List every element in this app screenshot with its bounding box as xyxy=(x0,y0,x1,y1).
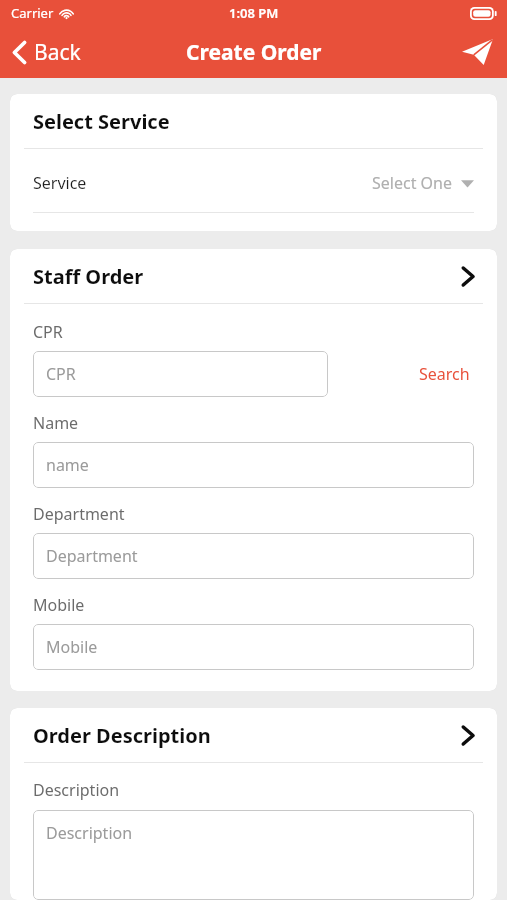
staticText: Order Description xyxy=(33,722,461,749)
button[interactable]: Order Description xyxy=(10,708,497,762)
staticText: Staff Order xyxy=(33,263,461,290)
staticText: Create Order xyxy=(186,38,322,67)
staticText: Department xyxy=(46,545,138,567)
staticText: Select Service xyxy=(33,108,475,135)
button[interactable]: Staff Order xyxy=(10,249,497,303)
staticText: Select One xyxy=(372,172,452,194)
button[interactable]: Mobile xyxy=(33,624,474,670)
staticText: Description xyxy=(33,779,120,801)
staticText: Description xyxy=(46,822,133,844)
staticText: Search xyxy=(419,363,470,385)
button[interactable]: Service xyxy=(10,149,497,212)
staticText: name xyxy=(46,454,89,476)
button[interactable]: Send xyxy=(448,28,507,76)
staticText: Department xyxy=(33,503,125,525)
button[interactable]: Search xyxy=(415,359,474,389)
staticText: CPR xyxy=(33,321,63,343)
button[interactable]: name xyxy=(33,442,474,488)
button[interactable]: CPR xyxy=(33,351,328,397)
button[interactable]: Department xyxy=(33,533,474,579)
staticText: Back xyxy=(34,38,81,67)
staticText: Service xyxy=(33,172,87,194)
button[interactable]: Description xyxy=(33,810,474,900)
staticText: Mobile xyxy=(46,636,98,658)
staticText: Name xyxy=(33,412,79,434)
staticText: 1:08 PM xyxy=(229,4,279,22)
button[interactable]: Back xyxy=(0,30,95,75)
staticText: CPR xyxy=(46,363,76,385)
staticText: Carrier xyxy=(11,4,54,22)
staticText: Mobile xyxy=(33,594,85,616)
